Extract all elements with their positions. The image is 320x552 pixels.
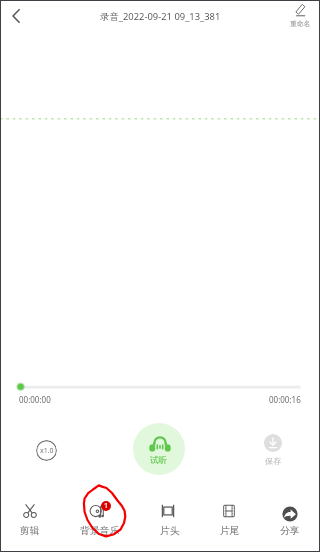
button[interactable]: 剪辑: [20, 501, 40, 537]
button[interactable]: 试听: [133, 423, 185, 475]
button[interactable]: x1.0: [36, 440, 57, 461]
staticText: 分享: [280, 525, 300, 537]
staticText: 重命名: [290, 19, 311, 28]
staticText: 背景音乐: [80, 525, 120, 537]
staticText: 片尾: [220, 525, 240, 537]
button[interactable]: 片头: [160, 501, 180, 537]
staticText: 00:00:16: [269, 394, 301, 405]
staticText: 00:00:00: [19, 394, 51, 405]
staticText: 片头: [160, 525, 180, 537]
button[interactable]: 1: [80, 501, 120, 537]
button[interactable]: 片尾: [220, 501, 240, 537]
staticText: 试听: [150, 455, 168, 466]
button[interactable]: 保存: [259, 434, 287, 466]
button[interactable]: 分享: [280, 501, 300, 537]
staticText: 剪辑: [20, 525, 40, 537]
button[interactable]: Back: [2, 2, 30, 30]
button[interactable]: 重命名: [286, 3, 314, 28]
staticText: 保存: [265, 456, 281, 466]
staticText: x1.0: [40, 446, 54, 456]
staticText: 1: [104, 501, 109, 511]
staticText: 录音_2022-09-21 09_13_381: [100, 10, 221, 23]
